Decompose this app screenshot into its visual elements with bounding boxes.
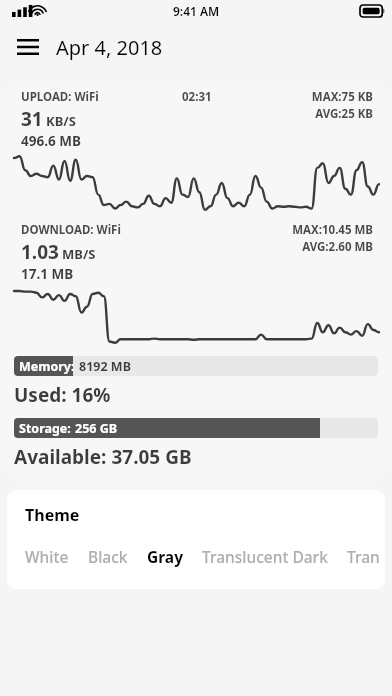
- button[interactable]: Translucent: [347, 546, 385, 567]
- staticText: KB/S: [46, 112, 76, 130]
- staticText: Memory:: [19, 358, 75, 375]
- staticText: MB/S: [62, 245, 96, 263]
- staticText: DOWNLOAD: WiFi: [21, 222, 121, 238]
- staticText: Theme: [25, 504, 80, 526]
- button[interactable]: Black: [88, 546, 128, 567]
- button[interactable]: Menu: [8, 27, 48, 67]
- staticText: 496.6 MB: [21, 132, 81, 150]
- button[interactable]: Gray: [147, 546, 183, 567]
- button[interactable]: White: [25, 546, 69, 567]
- staticText: 31: [21, 106, 43, 132]
- staticText: Used: 16%: [14, 382, 111, 408]
- staticText: 9:41 AM: [173, 3, 220, 19]
- staticText: 17.1 MB: [21, 265, 74, 283]
- staticText: Available: 37.05 GB: [14, 444, 192, 470]
- staticText: 8192 MB: [79, 358, 131, 375]
- button[interactable]: Memory:: [14, 356, 378, 376]
- staticText: AVG:25 KB: [315, 106, 373, 122]
- staticText: Apr 4, 2018: [56, 34, 163, 61]
- staticText: Translucent Dark: [202, 546, 328, 567]
- staticText: 1.03: [21, 239, 59, 265]
- button[interactable]: Storage:: [14, 418, 378, 438]
- staticText: Translucent: [347, 546, 385, 567]
- staticText: UPLOAD: WiFi: [21, 89, 99, 105]
- button[interactable]: Translucent Dark: [202, 546, 328, 567]
- staticText: MAX:10.45 MB: [292, 222, 373, 238]
- staticText: Storage:: [19, 420, 71, 437]
- staticText: Gray: [147, 546, 183, 567]
- staticText: Black: [88, 546, 128, 567]
- staticText: AVG:2.60 MB: [302, 239, 373, 255]
- staticText: MAX:75 KB: [311, 89, 373, 105]
- staticText: White: [25, 546, 69, 567]
- staticText: 256 GB: [75, 420, 118, 437]
- staticText: 02:31: [182, 89, 212, 105]
